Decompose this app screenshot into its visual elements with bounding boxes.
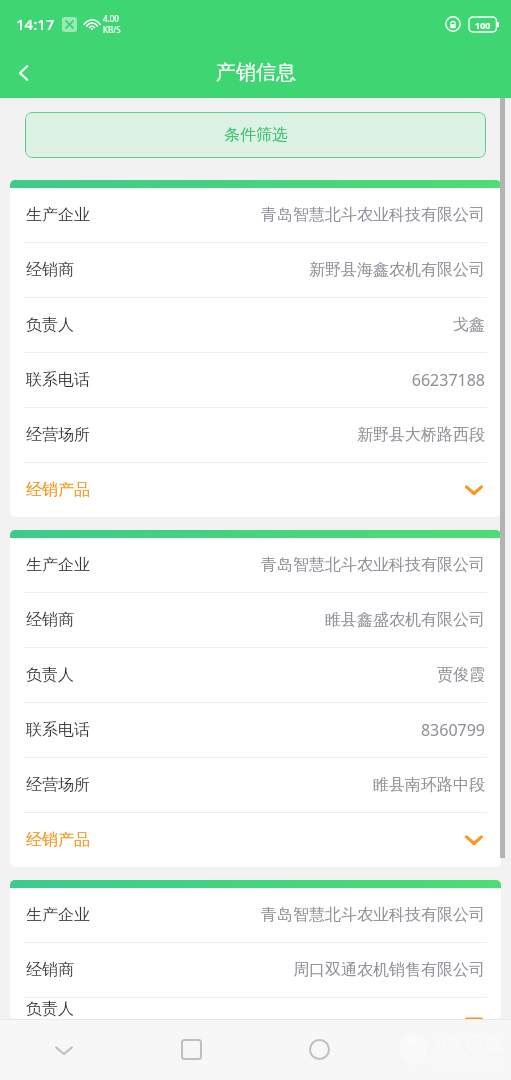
- staticText: 经营场所: [26, 775, 90, 795]
- staticText: 经销商: [26, 610, 74, 630]
- button[interactable]: 生产企业: [10, 888, 501, 942]
- button[interactable]: 负责人: [10, 648, 501, 702]
- button[interactable]: 经营场所: [10, 408, 501, 462]
- staticText: 生产企业: [26, 205, 90, 225]
- staticText: 青岛智慧北斗农业科技有限公司: [261, 905, 485, 925]
- staticText: 负责人: [26, 665, 74, 685]
- staticText: 联系电话: [26, 370, 90, 390]
- button[interactable]: 经销商: [10, 593, 501, 647]
- button[interactable]: 经销产品: [10, 463, 501, 517]
- button[interactable]: 联系电话: [10, 353, 501, 407]
- staticText: 4.00: [103, 13, 119, 24]
- staticText: 条件筛选: [224, 125, 288, 145]
- staticText: 戈鑫: [453, 315, 485, 335]
- button[interactable]: 返回: [0, 49, 48, 97]
- button[interactable]: 负责人: [10, 298, 501, 352]
- staticText: 66237188: [411, 369, 485, 391]
- staticText: 睢县南环路中段: [373, 775, 485, 795]
- staticText: 经销商: [26, 960, 74, 980]
- staticText: 生产企业: [26, 555, 90, 575]
- staticText: 经营场所: [26, 425, 90, 445]
- staticText: 8360799: [420, 719, 485, 741]
- staticText: 经销商: [26, 260, 74, 280]
- button[interactable]: 经营场所: [10, 758, 501, 812]
- staticText: 青岛智慧北斗农业科技有限公司: [261, 555, 485, 575]
- staticText: 新野县大桥路西段: [357, 425, 485, 445]
- staticText: 负责人: [26, 315, 74, 335]
- button[interactable]: 条件筛选: [25, 112, 486, 158]
- staticText: 睢县鑫盛农机有限公司: [325, 610, 485, 630]
- button[interactable]: 经销商: [10, 243, 501, 297]
- staticText: 青岛智慧北斗农业科技有限公司: [261, 205, 485, 225]
- staticText: 14:17: [16, 14, 55, 34]
- staticText: 周口双通农机销售有限公司: [293, 960, 485, 980]
- button[interactable]: 经销商: [10, 943, 501, 997]
- staticText: 经销产品: [26, 480, 90, 500]
- staticText: 负责人: [26, 999, 74, 1019]
- button[interactable]: 经销产品: [10, 813, 501, 867]
- staticText: 贾俊霞: [437, 665, 485, 685]
- staticText: 新野县海鑫农机有限公司: [309, 260, 485, 280]
- staticText: KB/S: [103, 24, 121, 35]
- button[interactable]: 负责人: [10, 998, 501, 1019]
- button[interactable]: 生产企业: [10, 188, 501, 242]
- button[interactable]: 最近应用: [127, 1019, 255, 1080]
- staticText: 经销产品: [26, 830, 90, 850]
- staticText: 100: [475, 19, 491, 31]
- staticText: 产销信息: [216, 60, 296, 85]
- button[interactable]: 主页: [255, 1019, 383, 1080]
- button[interactable]: 生产企业: [10, 538, 501, 592]
- staticText: 联系电话: [26, 720, 90, 740]
- staticText: 生产企业: [26, 905, 90, 925]
- button[interactable]: 联系电话: [10, 703, 501, 757]
- button[interactable]: 返回: [0, 1019, 127, 1080]
